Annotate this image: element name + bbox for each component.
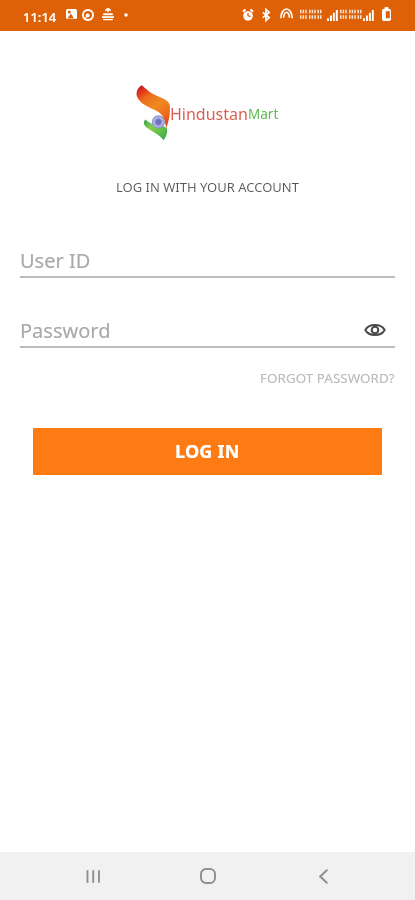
- button[interactable]: FORGOT PASSWORD?: [260, 369, 395, 387]
- staticText: User ID: [20, 247, 91, 272]
- button[interactable]: LOG IN: [33, 428, 382, 475]
- button[interactable]: Home: [184, 852, 232, 900]
- staticText: Mart: [248, 105, 279, 123]
- staticText: LOG IN WITH YOUR ACCOUNT: [0, 178, 415, 196]
- staticText: Password: [20, 317, 111, 342]
- staticText: LOG IN: [175, 439, 240, 464]
- button[interactable]: Back: [299, 852, 347, 900]
- staticText: 11:14: [23, 8, 57, 26]
- staticText: Hindustan: [170, 103, 248, 125]
- button[interactable]: Show password: [360, 317, 390, 342]
- button[interactable]: Recents: [68, 852, 116, 900]
